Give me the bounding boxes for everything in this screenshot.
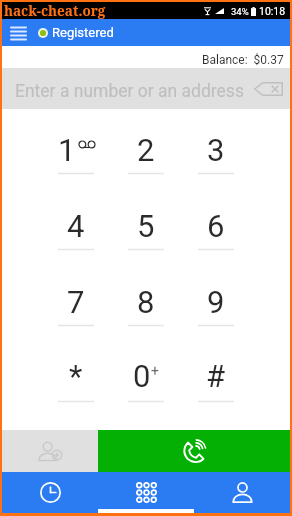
button[interactable]: Backspace — [253, 78, 284, 100]
staticText: 4 — [67, 208, 85, 244]
button[interactable]: Enter a number or an address — [2, 68, 290, 109]
button[interactable]: 6 — [181, 186, 251, 262]
button[interactable]: 3 — [181, 109, 251, 186]
staticText: 6 — [207, 208, 225, 244]
button[interactable]: 5 — [111, 186, 181, 262]
staticText: 10:18 — [259, 5, 286, 17]
button[interactable]: 8 — [111, 262, 181, 338]
staticText: # — [206, 358, 226, 394]
button[interactable]: 4 — [41, 186, 111, 262]
button[interactable]: Contacts — [194, 472, 290, 513]
button[interactable]: 1 — [41, 109, 111, 186]
button[interactable]: 7 — [41, 262, 111, 338]
staticText: Registered — [52, 25, 114, 40]
button[interactable]: Add to contacts — [2, 430, 98, 472]
staticText: 0 — [133, 358, 151, 394]
button[interactable]: * — [41, 338, 111, 414]
staticText: + — [151, 363, 159, 379]
staticText: Enter a number or an address — [15, 81, 244, 102]
staticText: 3 — [207, 132, 225, 168]
staticText: 34% — [231, 6, 249, 17]
staticText: 2 — [137, 132, 155, 168]
staticText: 5 — [137, 208, 155, 244]
staticText: 9 — [207, 284, 225, 320]
button[interactable]: Call — [98, 430, 290, 472]
button[interactable]: 0 — [111, 338, 181, 414]
button[interactable]: Recent calls — [2, 472, 98, 513]
button[interactable]: Balance: $0.37 — [2, 46, 290, 68]
staticText: 7 — [67, 284, 85, 320]
button[interactable]: # — [181, 338, 251, 414]
button[interactable]: Open navigation menu — [2, 19, 34, 46]
button[interactable]: 9 — [181, 262, 251, 338]
button[interactable]: 2 — [111, 109, 181, 186]
staticText: 8 — [137, 284, 155, 320]
staticText: 1 — [58, 132, 76, 168]
staticText: Balance: $0.37 — [202, 53, 284, 67]
staticText: * — [69, 358, 83, 394]
button[interactable]: Dial pad — [98, 472, 194, 513]
staticText: hack-cheat.org — [4, 2, 106, 19]
